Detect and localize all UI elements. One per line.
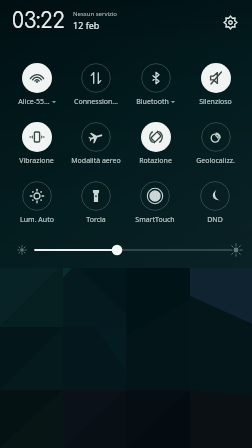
button[interactable]: Vibrazione [7, 113, 66, 172]
button[interactable]: SmartTouch [125, 172, 185, 231]
staticText: Geolocalizz. [196, 156, 235, 166]
button[interactable]: Settings [217, 9, 243, 35]
button[interactable]: Modalità aereo [66, 113, 125, 172]
button[interactable]: Lum. Auto [7, 172, 66, 231]
staticText: DND [207, 215, 223, 225]
button[interactable]: Geolocalizz. [185, 113, 245, 172]
button[interactable]: Torcia [66, 172, 125, 231]
staticText: Lum. Auto [20, 215, 54, 225]
staticText: Alice-55... [18, 97, 50, 107]
button[interactable]: Rotazione [125, 113, 185, 172]
staticText: Rotazione [139, 156, 172, 166]
staticText: Vibrazione [19, 156, 54, 166]
staticText: Connession... [74, 97, 118, 107]
staticText: 03:22 [12, 9, 65, 32]
button[interactable]: Brightness [0, 231, 252, 269]
button[interactable]: DND [185, 172, 245, 231]
button[interactable]: Alice-55... [7, 54, 66, 113]
button[interactable]: Silenzioso [185, 54, 245, 113]
button[interactable]: Connession... [66, 54, 125, 113]
staticText: Silenzioso [199, 97, 232, 107]
staticText: 12 feb [73, 19, 100, 31]
staticText: Nessun servizio [73, 10, 117, 18]
button[interactable]: Bluetooth [125, 54, 185, 113]
staticText: Torcia [86, 215, 106, 225]
staticText: Bluetooth [136, 97, 169, 107]
staticText: SmartTouch [135, 215, 175, 225]
staticText: Modalità aereo [71, 156, 121, 166]
